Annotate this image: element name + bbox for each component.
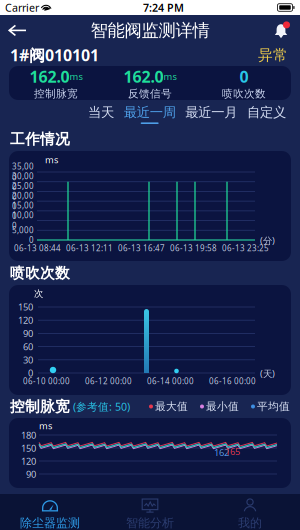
staticText: 最近一月 [185,104,237,120]
staticText: 自定义 [247,104,286,120]
staticText: Carrier [5,0,39,15]
staticText: 7:24 PM [143,0,184,15]
staticText: ms [39,420,52,432]
staticText: 162 [214,446,229,459]
button[interactable]: 除尘器监测 [0,494,100,530]
staticText: (天) [260,367,275,380]
staticText: 次 [34,288,43,299]
staticText: 120 [18,314,33,326]
button[interactable]: 智能分析 [100,494,200,530]
staticText: 我的 [238,516,262,530]
button[interactable]: Notifications [260,15,300,46]
staticText: ms [163,70,176,83]
staticText: 反馈信号 [128,87,172,100]
staticText: 智能阀监测详情 [90,20,209,41]
staticText: 最小值 [206,400,239,413]
staticText: 除尘器监测 [20,516,80,530]
button[interactable]: 最近一周 [120,103,180,127]
staticText: 智能分析 [126,516,174,530]
staticText: 最近一周 [124,104,176,120]
button[interactable]: Back [0,15,39,46]
staticText: 20,000 [12,190,34,211]
staticText: 150 [21,442,36,454]
staticText: 30 [23,354,33,366]
staticText: 06-12 00:00 [85,376,132,386]
staticText: 异常 [258,46,288,64]
staticText: 90 [23,327,33,340]
staticText: 35,000 [12,161,34,182]
staticText: 0 [28,367,33,379]
staticText: (分) [260,234,275,247]
staticText: 30,000 [12,171,34,192]
staticText: 10,000 [12,210,34,231]
staticText: 平均值 [257,400,290,413]
staticText: 06-14 00:00 [147,376,194,386]
staticText: 06-13 23:25 [222,243,269,253]
button[interactable]: 自定义 [243,103,290,127]
staticText: 控制脉宽 [34,87,78,100]
staticText: 162.0 [123,66,163,87]
staticText: 60 [23,340,33,353]
staticText: 06-13 16:47 [118,243,165,253]
staticText: 喷吹次数 [222,87,266,100]
staticText: 喷吹次数 [10,264,70,282]
staticText: ms [45,154,58,166]
staticText: 162.0 [29,66,69,87]
staticText: 165 [225,445,240,458]
staticText: 150 [18,301,33,313]
staticText: 最大值 [155,400,188,413]
staticText: 06-13 19:58 [170,243,217,253]
staticText: (参考值: 50) [73,399,130,414]
staticText: 06-10 00:00 [23,376,70,386]
staticText: 06-13 08:44 [14,243,61,253]
staticText: 1#阀010101 [10,44,99,66]
staticText: 120 [21,455,36,467]
staticText: 0 [239,66,248,87]
button[interactable]: 最近一月 [181,103,241,127]
staticText: 180 [21,429,36,441]
staticText: 控制脉宽 [10,397,70,415]
staticText: 当天 [88,104,114,120]
staticText: 90 [26,468,36,480]
button[interactable]: 当天 [84,103,118,127]
staticText: 5,000 [12,225,34,235]
button[interactable]: 我的 [200,494,300,530]
staticText: 0 [29,234,34,245]
staticText: 工作情况 [10,130,70,148]
button[interactable]: 异常 [256,46,290,64]
staticText: ms [69,70,82,83]
staticText: 15,000 [12,200,34,221]
staticText: 06-13 12:11 [66,243,113,253]
staticText: 06-16 00:00 [209,376,256,386]
staticText: 25,000 [12,181,34,202]
